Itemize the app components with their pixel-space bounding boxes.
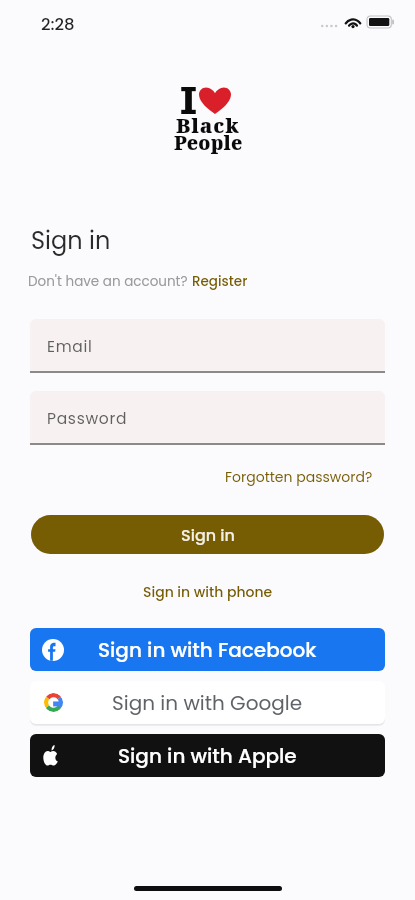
staticText: Sign in [31, 224, 111, 258]
button[interactable]: Sign in with Facebook [30, 628, 385, 671]
button[interactable]: Email [30, 319, 385, 373]
staticText: Email [47, 336, 93, 358]
button[interactable]: Sign in with Google [30, 681, 385, 724]
staticText: Sign in with phone [143, 582, 273, 602]
staticText: Black [176, 112, 240, 139]
button[interactable]: Sign in with phone [143, 582, 273, 602]
staticText: Forgotten password? [225, 467, 373, 487]
staticText: Sign in [181, 524, 235, 546]
staticText: Sign in with Google [112, 689, 303, 717]
button[interactable]: Password [30, 391, 385, 445]
staticText: Password [47, 408, 128, 430]
button[interactable]: Forgotten password? [225, 467, 373, 487]
staticText: Register [192, 272, 248, 291]
staticText: 2:28 [41, 13, 75, 36]
staticText: Sign in with Apple [118, 742, 297, 770]
staticText: Sign in with Facebook [98, 636, 317, 664]
staticText: Don't have an account? [28, 272, 192, 291]
button[interactable]: Sign in with Apple [30, 734, 385, 777]
button[interactable]: Register [192, 272, 248, 291]
staticText: People [174, 130, 243, 156]
button[interactable]: Sign in [31, 515, 384, 554]
